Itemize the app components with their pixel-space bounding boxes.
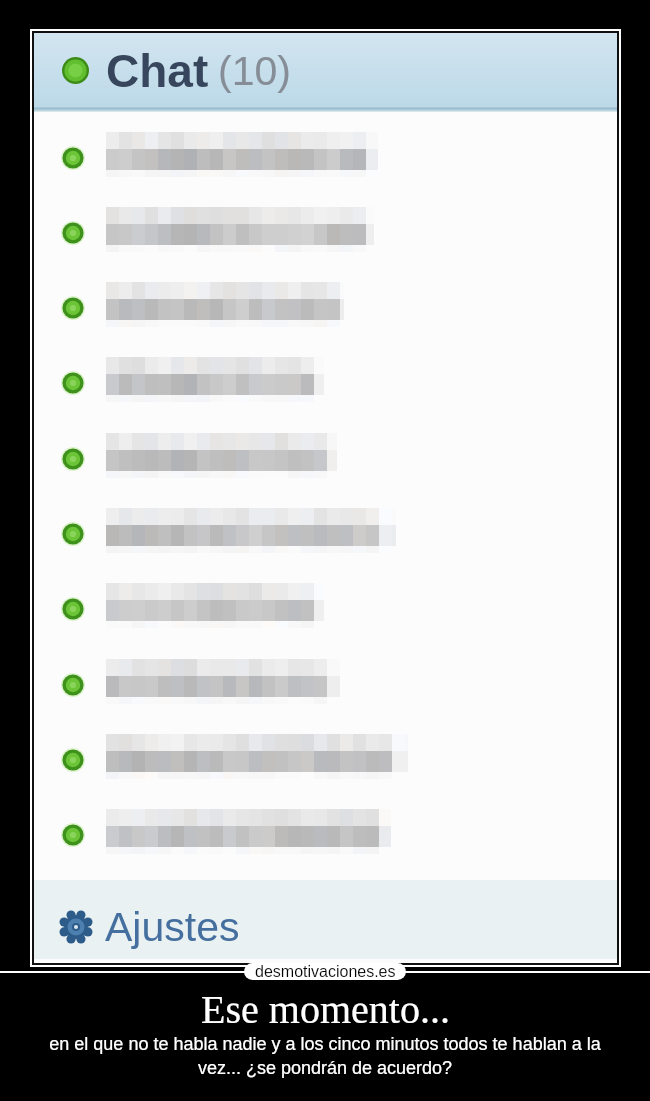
button[interactable]: desmotivaciones.es [244, 963, 406, 980]
staticText: Ajustes [105, 904, 240, 950]
button[interactable] [34, 280, 617, 336]
button[interactable] [34, 431, 617, 487]
staticText: Ese momento... [201, 987, 450, 1031]
button[interactable] [34, 130, 617, 186]
staticText: (10) [218, 48, 291, 94]
button[interactable] [34, 732, 617, 788]
staticText: en el que no te habla nadie y a los cinc… [35, 1034, 615, 1078]
button[interactable] [34, 506, 617, 562]
button[interactable] [34, 807, 617, 863]
staticText: desmotivaciones.es [255, 963, 396, 980]
other: Ajustes [59, 910, 93, 944]
button[interactable] [34, 355, 617, 411]
button[interactable]: Chat [34, 33, 617, 107]
button[interactable] [34, 205, 617, 261]
staticText: Chat [106, 45, 209, 96]
button[interactable]: Ajustes [34, 880, 617, 959]
button[interactable] [34, 581, 617, 637]
button[interactable] [34, 657, 617, 713]
